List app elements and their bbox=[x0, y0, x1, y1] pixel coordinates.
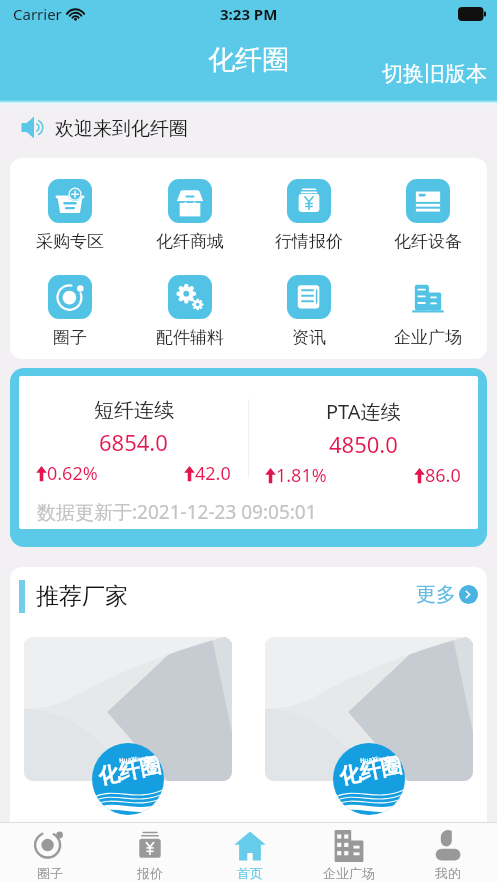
staticText: 42.0 bbox=[195, 461, 231, 486]
staticText: 资讯 bbox=[292, 327, 326, 348]
staticText: PTA连续 bbox=[326, 398, 401, 425]
staticText: 采购专区 bbox=[36, 231, 104, 252]
staticText: 更多 bbox=[416, 582, 456, 607]
staticText: 化纤设备 bbox=[394, 231, 462, 252]
staticText: 企业广场 bbox=[323, 865, 375, 881]
button[interactable]: 圈子 bbox=[10, 275, 130, 348]
staticText: 化纤圈 bbox=[208, 43, 289, 77]
button[interactable]: 切换旧版本 bbox=[372, 56, 497, 92]
button[interactable]: 企业广场 bbox=[299, 823, 398, 883]
staticText: 化纤圈 bbox=[96, 752, 163, 790]
staticText: 我的 bbox=[435, 865, 461, 881]
staticText: HuaXianQuan bbox=[119, 753, 161, 764]
staticText: 4850.0 bbox=[329, 429, 398, 459]
button[interactable]: 报价 bbox=[100, 823, 200, 883]
staticText: 3:23 PM bbox=[220, 4, 278, 24]
staticText: 首页 bbox=[237, 865, 263, 881]
staticText: HuaXianQuan bbox=[360, 753, 402, 764]
button[interactable]: 化纤圈 bbox=[258, 626, 480, 822]
button[interactable]: 资讯 bbox=[249, 275, 368, 348]
staticText: 化纤商城 bbox=[156, 231, 224, 252]
staticText: Carrier bbox=[13, 4, 62, 24]
staticText: 切换旧版本 bbox=[382, 61, 487, 87]
button[interactable]: 圈子 bbox=[0, 823, 100, 883]
staticText: 1.81% bbox=[276, 463, 327, 488]
staticText: 0.62% bbox=[47, 461, 98, 486]
button[interactable]: 化纤商城 bbox=[130, 179, 249, 252]
staticText: 86.0 bbox=[425, 463, 461, 488]
button[interactable]: 更多 bbox=[408, 576, 481, 613]
staticText: 企业广场 bbox=[394, 327, 462, 348]
staticText: 推荐厂家 bbox=[36, 582, 128, 611]
button[interactable]: 化纤设备 bbox=[368, 179, 487, 252]
staticText: 行情报价 bbox=[275, 231, 343, 252]
button[interactable]: 企业广场 bbox=[368, 275, 487, 348]
button[interactable]: 行情报价 bbox=[249, 179, 368, 252]
staticText: 数据更新于:2021-12-23 09:05:01 bbox=[37, 499, 317, 525]
button[interactable]: 欢迎来到化纤圈 bbox=[0, 105, 497, 158]
staticText: 欢迎来到化纤圈 bbox=[55, 117, 188, 141]
staticText: 化纤圈 bbox=[337, 752, 404, 790]
staticText: 圈子 bbox=[37, 865, 63, 881]
button[interactable]: 配件辅料 bbox=[130, 275, 249, 348]
staticText: 报价 bbox=[137, 865, 163, 881]
button[interactable]: 采购专区 bbox=[10, 179, 130, 252]
button[interactable]: 我的 bbox=[398, 823, 497, 883]
staticText: 短纤连续 bbox=[94, 398, 174, 423]
button[interactable]: 首页 bbox=[200, 823, 299, 883]
staticText: 圈子 bbox=[53, 327, 87, 348]
staticText: 配件辅料 bbox=[156, 327, 224, 348]
button[interactable]: 化纤圈 bbox=[17, 626, 239, 822]
staticText: 6854.0 bbox=[99, 427, 168, 457]
